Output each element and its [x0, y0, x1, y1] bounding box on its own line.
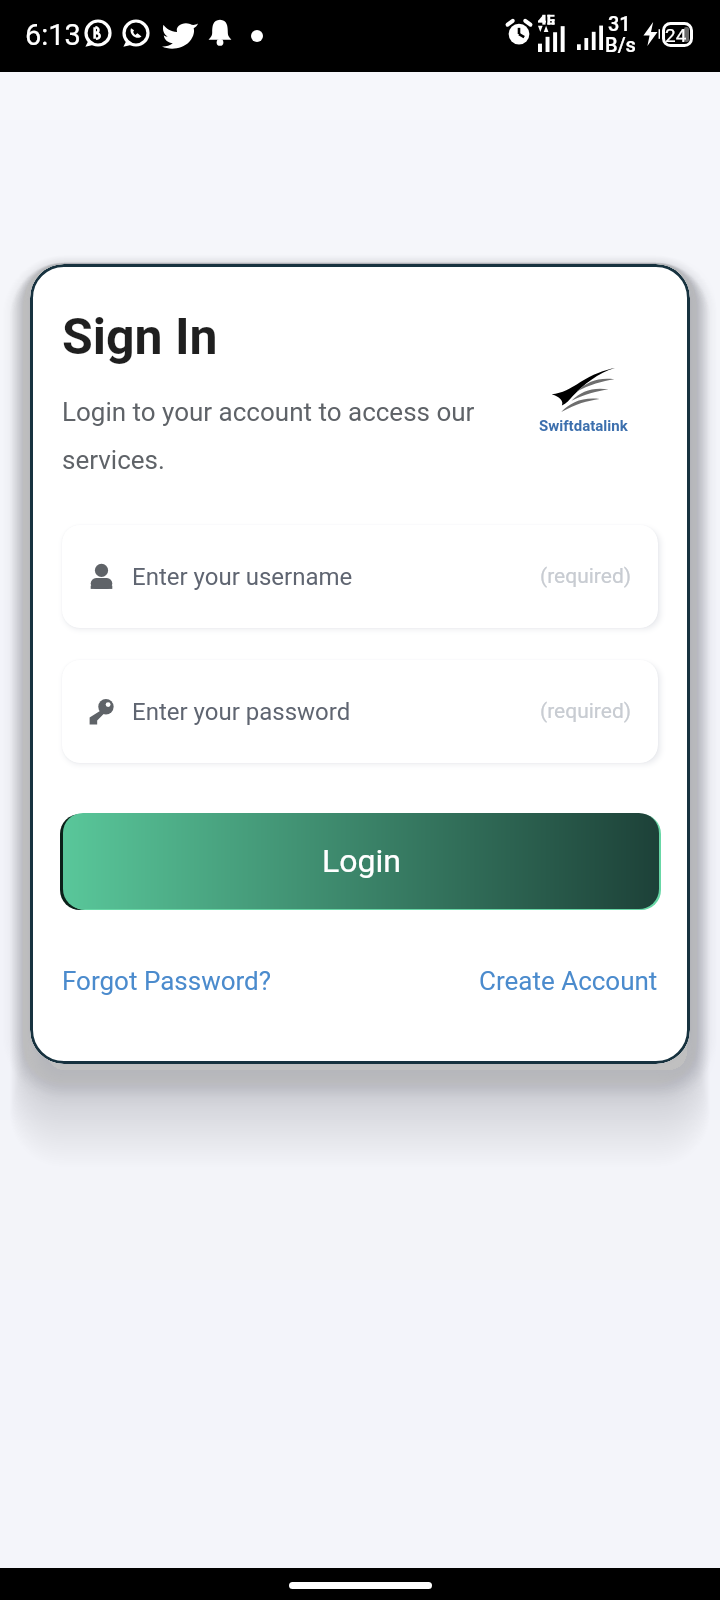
staticText: Swiftdatalink [539, 417, 628, 435]
staticText: Enter your username [132, 563, 353, 591]
staticText: Login [322, 842, 401, 880]
staticText: (required) [540, 564, 632, 589]
staticText: 31 [608, 12, 631, 35]
button[interactable]: Forgot Password? [62, 964, 272, 998]
button[interactable]: Enter your password [62, 660, 658, 763]
button[interactable]: Create Account [479, 964, 658, 998]
staticText: (required) [540, 699, 632, 724]
staticText: 6:13 [25, 18, 81, 52]
staticText: Enter your password [132, 698, 351, 726]
staticText: B/s [605, 33, 636, 56]
staticText: 24 [665, 24, 687, 46]
staticText: Login to your account to access our serv… [62, 397, 487, 475]
button[interactable]: Login [63, 813, 659, 909]
button[interactable]: Enter your username [62, 525, 658, 628]
staticText: Sign In [62, 308, 218, 367]
